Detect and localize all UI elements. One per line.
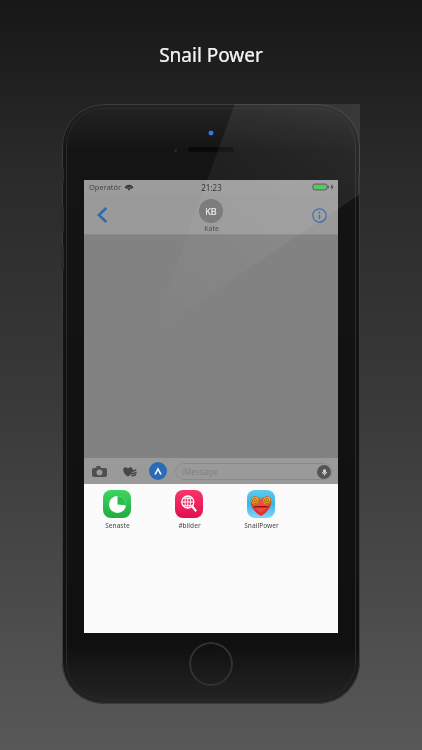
- button[interactable]: SnailPower: [238, 490, 284, 530]
- staticText: KB: [205, 205, 217, 217]
- staticText: Operatör: [89, 182, 122, 192]
- button[interactable]: Senaste: [94, 490, 140, 530]
- button[interactable]: Record audio: [317, 465, 331, 479]
- staticText: Senaste: [105, 521, 130, 530]
- button[interactable]: Digital Touch: [119, 461, 139, 481]
- button[interactable]: iMessage: [175, 463, 333, 480]
- button[interactable]: Back: [90, 203, 114, 227]
- button[interactable]: #bilder: [166, 490, 212, 530]
- staticText: 21:23: [201, 182, 222, 193]
- button[interactable]: Details: [308, 204, 330, 226]
- button[interactable]: Camera: [89, 461, 109, 481]
- staticText: Kate: [204, 224, 219, 234]
- staticText: iMessage: [182, 466, 218, 477]
- button[interactable]: Home: [189, 642, 233, 686]
- button[interactable]: KB: [199, 199, 223, 234]
- button[interactable]: App Store: [149, 462, 167, 480]
- staticText: Snail Power: [159, 42, 263, 68]
- staticText: SnailPower: [244, 521, 279, 530]
- staticText: #bilder: [178, 521, 201, 530]
